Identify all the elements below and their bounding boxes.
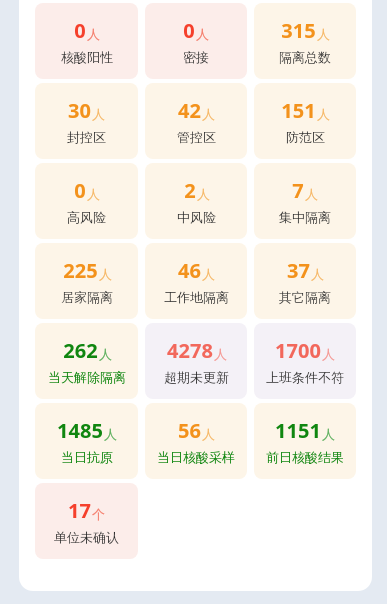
staticText: 人 <box>197 186 210 202</box>
staticText: 个 <box>92 506 105 522</box>
staticText: 人 <box>322 426 335 442</box>
staticText: 30 <box>68 97 91 124</box>
button[interactable]: 2 <box>145 163 247 239</box>
button[interactable]: 56 <box>145 403 247 479</box>
staticText: 262 <box>63 337 98 364</box>
button[interactable]: 0 <box>35 3 138 79</box>
button[interactable]: 262 <box>35 323 138 399</box>
button[interactable]: 42 <box>145 83 247 159</box>
staticText: 其它隔离 <box>279 289 331 305</box>
staticText: 前日核酸结果 <box>266 449 344 465</box>
staticText: 超期未更新 <box>164 369 229 385</box>
staticText: 人 <box>99 266 112 282</box>
staticText: 当日抗原 <box>61 449 113 465</box>
staticText: 中风险 <box>177 209 216 225</box>
staticText: 人 <box>196 26 209 42</box>
staticText: 人 <box>99 346 112 362</box>
staticText: 42 <box>178 97 201 124</box>
staticText: 151 <box>281 97 316 124</box>
staticText: 当日核酸采样 <box>157 449 235 465</box>
button[interactable]: 0 <box>35 163 138 239</box>
button[interactable]: 1485 <box>35 403 138 479</box>
staticText: 人 <box>202 426 215 442</box>
staticText: 人 <box>317 106 330 122</box>
staticText: 0 <box>74 17 86 44</box>
button[interactable]: 4278 <box>145 323 247 399</box>
staticText: 56 <box>178 417 201 444</box>
staticText: 封控区 <box>67 129 106 145</box>
staticText: 人 <box>202 106 215 122</box>
staticText: 单位未确认 <box>54 529 119 545</box>
button[interactable]: 1151 <box>254 403 356 479</box>
button[interactable]: 315 <box>254 3 356 79</box>
staticText: 人 <box>322 346 335 362</box>
button[interactable]: 7 <box>254 163 356 239</box>
staticText: 当天解除隔离 <box>48 369 126 385</box>
staticText: 17 <box>68 497 91 524</box>
staticText: 人 <box>87 186 100 202</box>
staticText: 上班条件不符 <box>266 369 344 385</box>
staticText: 7 <box>292 177 304 204</box>
staticText: 人 <box>202 266 215 282</box>
staticText: 1151 <box>275 417 321 444</box>
staticText: 37 <box>287 257 310 284</box>
button[interactable]: 30 <box>35 83 138 159</box>
staticText: 0 <box>74 177 86 204</box>
button[interactable]: 0 <box>145 3 247 79</box>
staticText: 隔离总数 <box>279 49 331 65</box>
staticText: 高风险 <box>67 209 106 225</box>
staticText: 1700 <box>275 337 321 364</box>
staticText: 225 <box>63 257 98 284</box>
staticText: 人 <box>214 346 227 362</box>
staticText: 0 <box>183 17 195 44</box>
staticText: 集中隔离 <box>279 209 331 225</box>
staticText: 人 <box>311 266 324 282</box>
staticText: 人 <box>305 186 318 202</box>
staticText: 人 <box>87 26 100 42</box>
staticText: 315 <box>281 17 316 44</box>
staticText: 密接 <box>183 49 209 65</box>
staticText: 1485 <box>57 417 103 444</box>
button[interactable]: 1700 <box>254 323 356 399</box>
staticText: 工作地隔离 <box>164 289 229 305</box>
staticText: 居家隔离 <box>61 289 113 305</box>
staticText: 人 <box>317 26 330 42</box>
staticText: 核酸阳性 <box>61 49 113 65</box>
button[interactable]: 37 <box>254 243 356 319</box>
button[interactable]: 17 <box>35 483 138 559</box>
staticText: 人 <box>104 426 117 442</box>
staticText: 防范区 <box>286 129 325 145</box>
staticText: 管控区 <box>177 129 216 145</box>
button[interactable]: 46 <box>145 243 247 319</box>
button[interactable]: 225 <box>35 243 138 319</box>
button[interactable]: 151 <box>254 83 356 159</box>
staticText: 人 <box>92 106 105 122</box>
staticText: 4278 <box>167 337 213 364</box>
staticText: 2 <box>184 177 196 204</box>
staticText: 46 <box>178 257 201 284</box>
